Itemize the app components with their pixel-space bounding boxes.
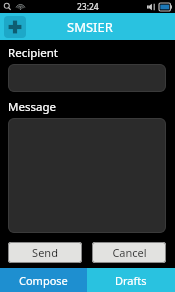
staticText: Recipient (8, 45, 58, 61)
button[interactable]: Send (8, 242, 82, 263)
staticText: SMSIER (67, 18, 113, 36)
button[interactable]: New message (4, 16, 26, 38)
button[interactable] (8, 64, 166, 92)
staticText: Cancel (112, 245, 147, 260)
staticText: Send (32, 245, 58, 260)
staticText: 23:24 (77, 1, 99, 13)
staticText: Compose (19, 273, 68, 288)
staticText: Drafts (115, 273, 147, 288)
button[interactable]: Drafts (87, 268, 175, 292)
staticText: Message (8, 99, 56, 115)
button[interactable]: Cancel (92, 242, 166, 263)
button[interactable]: Compose (0, 268, 87, 292)
